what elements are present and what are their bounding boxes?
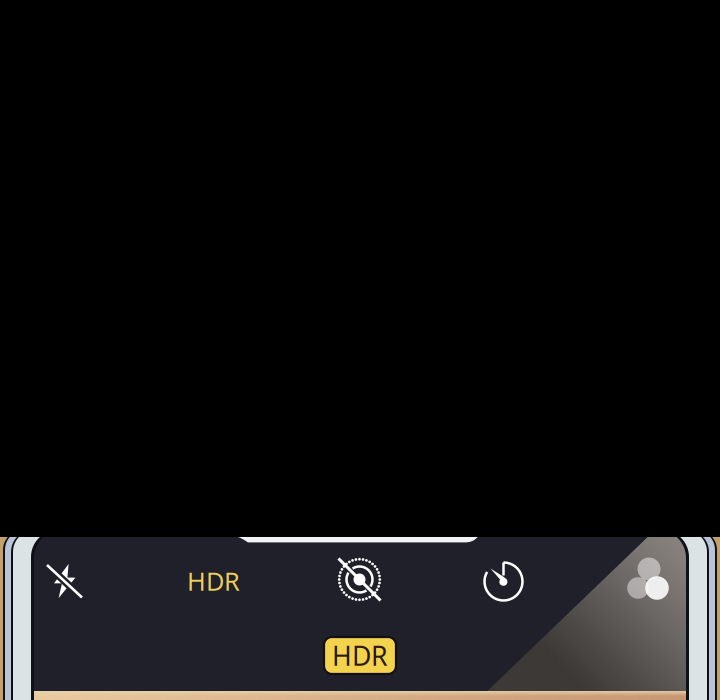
staticText: HDR	[187, 564, 240, 598]
staticText: HDR	[332, 638, 388, 673]
button[interactable]: HDR	[324, 637, 396, 674]
button[interactable]: HDR	[187, 564, 240, 598]
button[interactable]: Timer	[483, 561, 524, 602]
button[interactable]: Live Photo off	[337, 557, 382, 602]
button[interactable]: Filters	[627, 557, 671, 601]
button[interactable]: Flash off	[46, 562, 84, 600]
